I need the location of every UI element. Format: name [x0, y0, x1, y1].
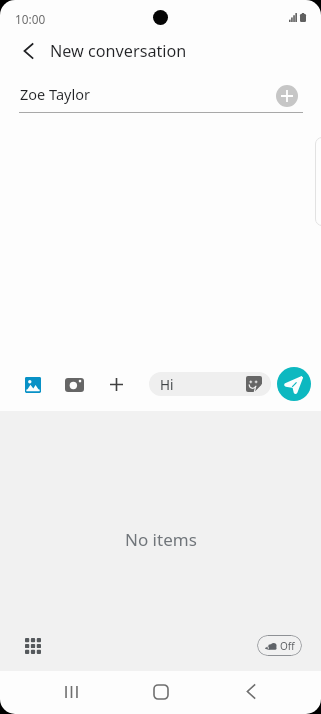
- button[interactable]: Recent apps: [47, 669, 95, 714]
- button[interactable]: Send: [277, 367, 311, 401]
- button[interactable]: More options: [100, 368, 133, 401]
- button[interactable]: Gallery: [16, 368, 49, 401]
- button[interactable]: Back: [227, 669, 275, 714]
- button[interactable]: Hi: [149, 372, 271, 396]
- button[interactable]: Off: [257, 635, 302, 656]
- staticText: Zoe Taylor: [20, 84, 90, 104]
- button[interactable]: Apps: [18, 631, 47, 660]
- other: Stickers: [246, 376, 262, 392]
- button[interactable]: Add recipient: [276, 85, 298, 107]
- staticText: New conversation: [50, 40, 187, 62]
- button[interactable]: Navigate up: [10, 33, 46, 69]
- button[interactable]: Home: [137, 669, 185, 714]
- staticText: Off: [280, 639, 295, 653]
- staticText: Hi: [160, 376, 174, 394]
- button[interactable]: Camera: [58, 368, 91, 401]
- staticText: No items: [125, 528, 197, 551]
- staticText: 10:00: [15, 11, 46, 27]
